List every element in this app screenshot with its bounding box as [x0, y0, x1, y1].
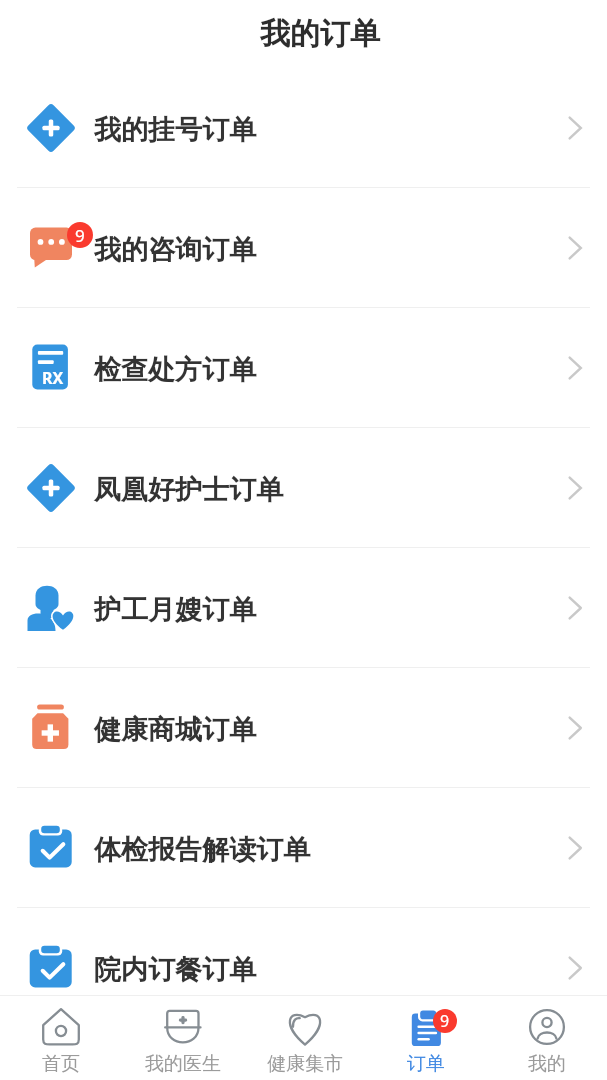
- button[interactable]: 护工月嫂订单: [0, 548, 607, 667]
- staticText: 院内订餐订单: [94, 953, 256, 987]
- button[interactable]: 我的医生: [122, 996, 244, 1080]
- staticText: 健康商城订单: [94, 713, 256, 747]
- staticText: 凤凰好护士订单: [94, 473, 283, 507]
- staticText: 首页: [42, 1052, 80, 1076]
- staticText: 我的挂号订单: [94, 113, 256, 147]
- staticText: 订单: [407, 1052, 445, 1076]
- staticText: 9: [440, 1010, 450, 1032]
- staticText: 我的: [528, 1052, 566, 1076]
- staticText: 检查处方订单: [94, 353, 256, 387]
- staticText: 健康集市: [267, 1052, 343, 1076]
- staticText: 护工月嫂订单: [94, 593, 256, 627]
- button[interactable]: 我的挂号订单: [0, 68, 607, 187]
- staticText: 我的咨询订单: [94, 233, 256, 267]
- button[interactable]: RX: [0, 308, 607, 427]
- button[interactable]: 健康集市: [244, 996, 365, 1080]
- staticText: 体检报告解读订单: [94, 833, 310, 867]
- button[interactable]: 体检报告解读订单: [0, 788, 607, 907]
- staticText: 9: [75, 224, 85, 247]
- button[interactable]: 凤凰好护士订单: [0, 428, 607, 547]
- button[interactable]: 健康商城订单: [0, 668, 607, 787]
- button[interactable]: 9: [0, 188, 607, 307]
- button[interactable]: 首页: [0, 996, 122, 1080]
- staticText: 我的医生: [145, 1052, 221, 1076]
- staticText: 我的订单: [260, 15, 380, 53]
- button[interactable]: 院内订餐订单: [0, 908, 607, 1027]
- button[interactable]: 9: [365, 996, 486, 1080]
- staticText: RX: [42, 367, 64, 389]
- button[interactable]: 我的: [486, 996, 607, 1080]
